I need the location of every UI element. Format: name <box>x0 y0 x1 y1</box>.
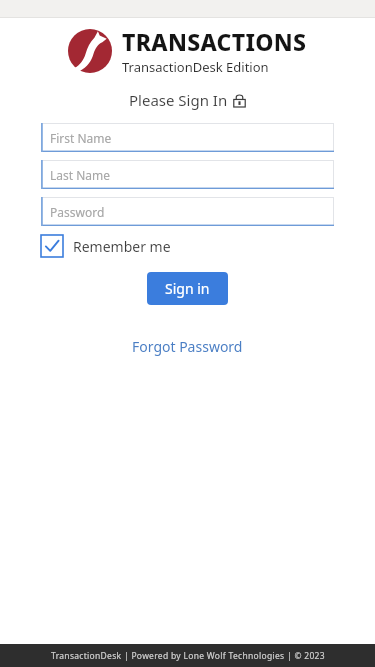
staticText: Please Sign In <box>129 90 228 110</box>
button[interactable]: Last Name <box>41 160 334 189</box>
button[interactable]: Password <box>41 197 334 226</box>
staticText: Last Name <box>50 167 111 183</box>
staticText: First Name <box>50 130 112 146</box>
button[interactable]: Forgot Password <box>128 333 247 360</box>
staticText: Password <box>50 204 105 220</box>
staticText: TRANSACTIONS <box>122 26 307 57</box>
button[interactable]: First Name <box>41 123 334 152</box>
staticText: TransactionDesk Edition <box>122 58 269 76</box>
staticText: Sign in <box>165 279 210 298</box>
staticText: Remember me <box>73 237 171 256</box>
staticText: Forgot Password <box>132 337 243 356</box>
other: Secure sign in <box>233 94 246 107</box>
button[interactable]: Remember me <box>41 233 171 259</box>
staticText: TransactionDesk | Powered by Lone Wolf T… <box>51 650 325 662</box>
button[interactable]: Sign in <box>147 272 228 305</box>
